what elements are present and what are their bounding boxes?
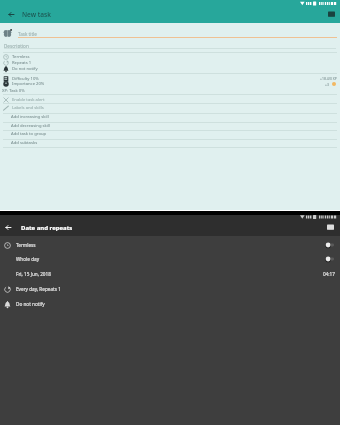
button[interactable]: Add subtasks: [0, 139, 340, 147]
button[interactable]: Labels and skills: [0, 104, 340, 111]
button[interactable]: Repeats 1: [0, 59, 340, 66]
staticText: Termless: [12, 54, 30, 60]
button[interactable]: Add increasing skill: [0, 113, 340, 121]
staticText: Add increasing skill: [11, 114, 49, 120]
staticText: Add decreasing skill: [11, 123, 51, 129]
button[interactable]: Every day, Repeats 1: [0, 282, 340, 296]
staticText: Do not notify: [12, 66, 38, 72]
button[interactable]: Termless: [0, 238, 340, 252]
staticText: Description: [4, 43, 29, 49]
staticText: Fri, 15 Jun, 2018: [16, 271, 51, 277]
staticText: Termless: [16, 242, 36, 248]
staticText: 04:17: [323, 271, 335, 277]
staticText: Repeats 1: [12, 60, 32, 66]
button[interactable]: Back: [0, 219, 17, 236]
button[interactable]: Importance 20%: [0, 80, 340, 87]
staticText: Add subtasks: [11, 140, 38, 146]
button[interactable]: Save: [322, 219, 339, 236]
button[interactable]: Add task to group: [0, 130, 340, 138]
button[interactable]: Add decreasing skill: [0, 122, 340, 130]
staticText: Enable task alert: [12, 97, 45, 103]
button[interactable]: Back: [3, 6, 19, 23]
button[interactable]: Fri, 15 Jun, 2018: [0, 267, 340, 281]
button[interactable]: Do not notify: [0, 297, 340, 311]
staticText: XP: Task 0%: [2, 88, 25, 94]
button[interactable]: Difficulty 10%: [0, 75, 340, 82]
button[interactable]: Do not notify: [0, 65, 340, 72]
button[interactable]: Enable task alert: [0, 96, 340, 103]
staticText: Whole day: [16, 256, 40, 262]
staticText: New task: [22, 10, 51, 19]
button[interactable]: Whole day: [0, 252, 340, 266]
staticText: Do not notify: [16, 301, 45, 307]
staticText: Difficulty 10%: [12, 76, 39, 82]
staticText: Importance 20%: [12, 81, 45, 87]
staticText: +3: [325, 82, 329, 87]
staticText: Every day, Repeats 1: [16, 286, 61, 292]
staticText: Task title: [18, 31, 37, 37]
button[interactable]: Termless: [0, 53, 340, 60]
staticText: Labels and skills: [12, 105, 44, 111]
staticText: +18.4/0 XP: [320, 76, 337, 81]
button[interactable]: Save: [323, 6, 339, 23]
staticText: Add task to group: [11, 131, 47, 137]
staticText: Date and repeats: [21, 224, 73, 232]
